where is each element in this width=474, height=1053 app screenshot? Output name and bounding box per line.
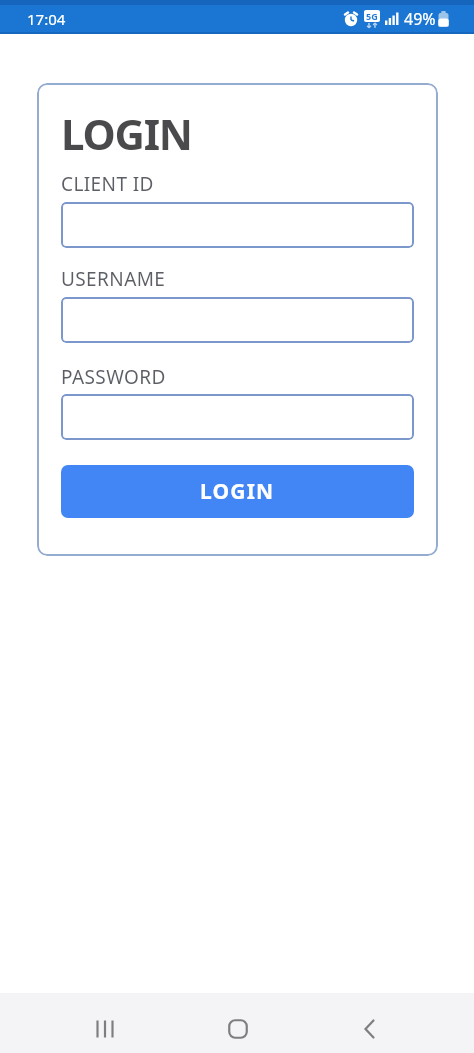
button[interactable] <box>349 1006 389 1046</box>
staticText: PASSWORD <box>61 364 166 390</box>
staticText: 17:04 <box>27 9 66 29</box>
staticText: 49% <box>404 8 436 30</box>
staticText: LOGIN <box>200 477 275 506</box>
staticText: USERNAME <box>61 266 166 292</box>
button[interactable] <box>218 1006 258 1046</box>
staticText: LOGIN <box>61 105 192 162</box>
button[interactable] <box>61 394 414 440</box>
staticText: CLIENT ID <box>61 171 154 197</box>
button[interactable] <box>61 297 414 343</box>
button[interactable] <box>61 202 414 248</box>
button[interactable]: LOGIN <box>61 465 414 518</box>
staticText: 5G <box>366 10 378 22</box>
button[interactable] <box>85 1006 125 1046</box>
